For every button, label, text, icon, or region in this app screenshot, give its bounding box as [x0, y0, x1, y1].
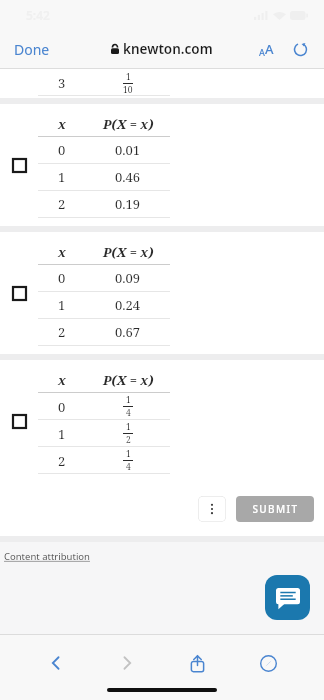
- staticText: 5:42: [26, 7, 50, 23]
- button[interactable]: Content attribution: [4, 550, 90, 563]
- button[interactable]: Select option: [8, 154, 30, 176]
- staticText: SUBMIT: [252, 502, 299, 516]
- button[interactable]: Reload: [288, 37, 312, 61]
- staticText: 0.67: [115, 323, 141, 341]
- button[interactable]: Select option: [8, 282, 30, 304]
- button[interactable]: Text size: [255, 36, 278, 62]
- staticText: 10: [123, 84, 133, 95]
- staticText: 1: [126, 394, 131, 406]
- button[interactable]: Forward: [105, 641, 149, 685]
- staticText: P(X = x): [103, 371, 154, 389]
- button[interactable]: More options: [198, 496, 226, 522]
- staticText: 4: [126, 407, 131, 419]
- staticText: 0.09: [115, 269, 141, 287]
- button[interactable]: Chat: [265, 575, 310, 620]
- staticText: 1: [58, 168, 66, 186]
- staticText: P(X = x): [103, 243, 154, 261]
- staticText: Content attribution: [4, 550, 90, 563]
- staticText: x: [58, 115, 66, 133]
- staticText: 1: [58, 296, 66, 314]
- button[interactable]: Select option: [0, 104, 324, 226]
- button[interactable]: Done: [0, 34, 64, 65]
- button[interactable]: Select option: [8, 410, 30, 432]
- staticText: 0: [58, 269, 66, 287]
- button[interactable]: Select option: [0, 360, 324, 482]
- staticText: 1: [126, 448, 131, 460]
- staticText: 1: [126, 421, 131, 433]
- staticText: P(X = x): [103, 115, 154, 133]
- staticText: 4: [126, 461, 131, 473]
- button[interactable]: SUBMIT: [236, 496, 314, 522]
- staticText: 3: [58, 74, 66, 92]
- staticText: 0.46: [115, 168, 141, 186]
- staticText: A: [265, 40, 274, 58]
- staticText: 0.24: [115, 296, 141, 314]
- staticText: 1: [58, 425, 66, 443]
- staticText: 0: [58, 398, 66, 416]
- staticText: knewton.com: [123, 40, 213, 58]
- staticText: 0.19: [115, 195, 141, 213]
- staticText: 2: [58, 452, 66, 470]
- staticText: x: [58, 243, 66, 261]
- staticText: 2: [58, 323, 66, 341]
- staticText: 2: [126, 434, 131, 446]
- button[interactable]: Select option: [0, 232, 324, 354]
- button[interactable]: Back: [34, 641, 78, 685]
- staticText: A: [259, 46, 265, 58]
- staticText: Done: [14, 40, 50, 59]
- button[interactable]: Share: [175, 641, 219, 685]
- button[interactable]: Bookmarks: [246, 641, 290, 685]
- staticText: 2: [58, 195, 66, 213]
- staticText: x: [58, 371, 66, 389]
- staticText: 0: [58, 141, 66, 159]
- staticText: 1: [126, 71, 131, 83]
- staticText: 0.01: [115, 141, 141, 159]
